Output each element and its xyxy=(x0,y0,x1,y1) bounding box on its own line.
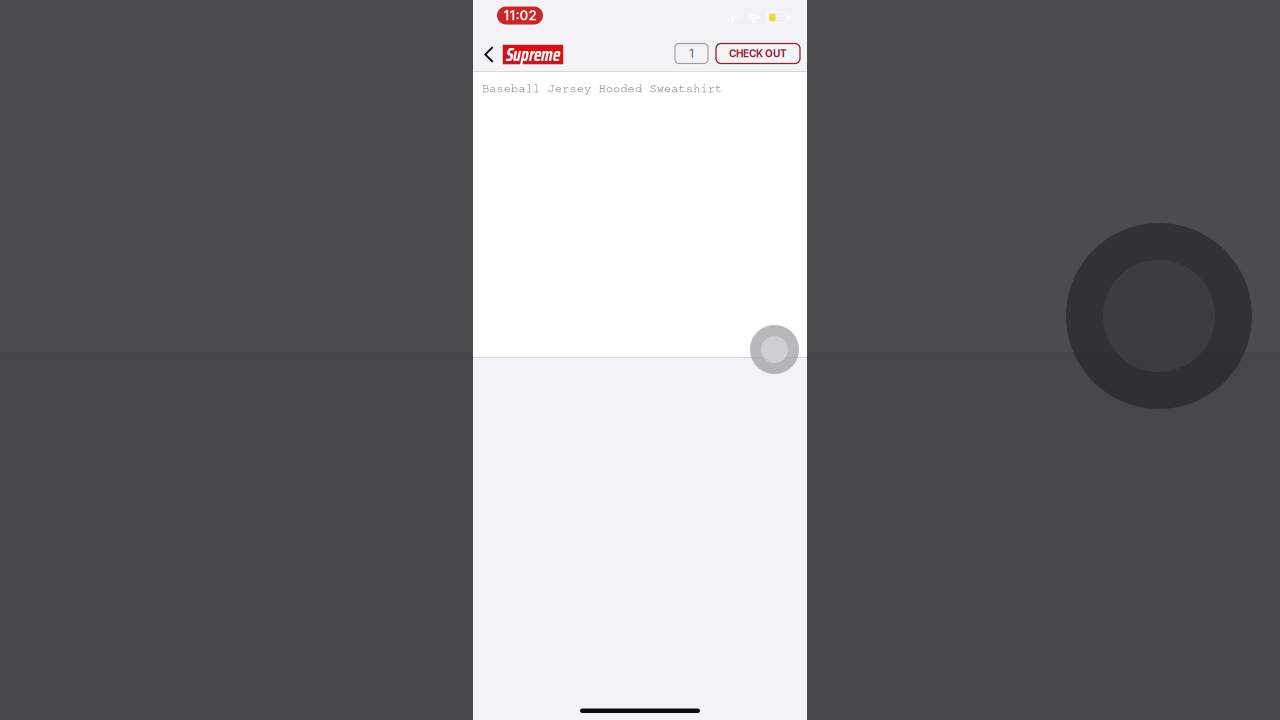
staticText: Baseball Jersey Hooded Sweatshirt xyxy=(482,81,722,95)
staticText: Supreme xyxy=(506,40,560,69)
staticText: CHECK OUT xyxy=(729,47,787,60)
staticText: 11:02 xyxy=(503,7,536,23)
staticText: 1 xyxy=(689,46,694,61)
button[interactable]: Quantity 1 xyxy=(675,43,708,65)
button[interactable]: Supreme xyxy=(499,35,567,73)
button[interactable]: Back xyxy=(479,35,499,73)
button[interactable]: CHECK OUT xyxy=(708,43,800,65)
